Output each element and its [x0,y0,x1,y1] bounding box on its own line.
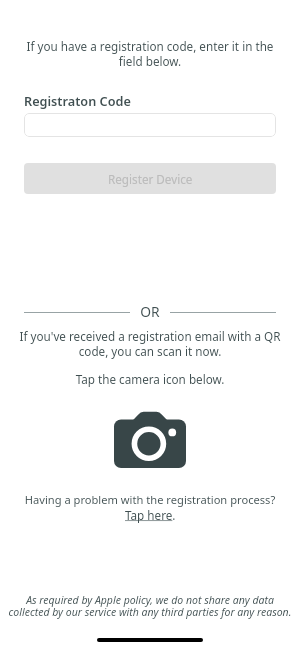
staticText: If you have a registration code, enter i… [18,38,282,69]
staticText: Tap the camera icon below. [0,371,300,387]
staticText: If you've received a registration email … [18,328,282,359]
staticText: Having a problem with the registration p… [0,492,300,507]
staticText: OR [0,302,300,321]
button[interactable] [24,113,276,137]
staticText: Registraton Code [24,92,131,109]
staticText: As required by Apple policy, we do not s… [7,593,293,619]
button[interactable]: Scan QR code with camera [114,411,186,468]
button[interactable]: Register Device [24,163,276,194]
staticText: Register Device [108,171,193,187]
button[interactable]: Tap here. [125,507,176,523]
